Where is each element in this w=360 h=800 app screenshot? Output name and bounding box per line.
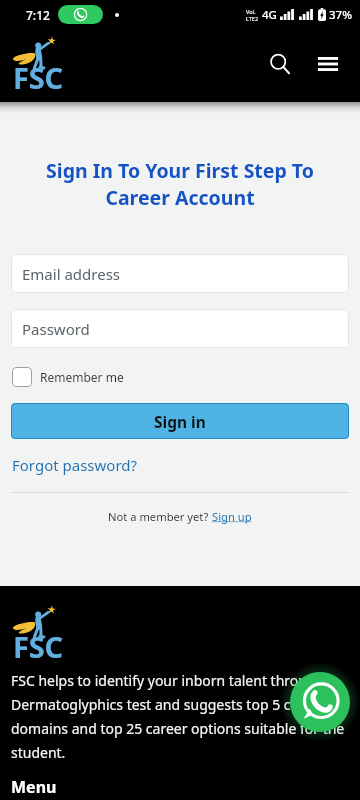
staticText: Forgot password?: [12, 455, 138, 475]
staticText: Sign in: [154, 411, 206, 432]
button[interactable]: Remember me: [12, 367, 124, 387]
staticText: Email address: [22, 264, 121, 284]
staticText: Password: [22, 319, 90, 339]
staticText: FSC helps to identify your inborn talent…: [11, 671, 345, 762]
button[interactable]: Forgot password?: [12, 455, 138, 475]
button[interactable]: Sign in: [11, 403, 349, 439]
staticText: 37%: [329, 7, 352, 23]
button[interactable]: Password: [11, 309, 349, 348]
staticText: Remember me: [40, 369, 124, 385]
staticText: FSC: [13, 58, 63, 97]
staticText: 4G: [262, 7, 277, 23]
button[interactable]: Chat on WhatsApp: [290, 672, 350, 732]
staticText: Menu: [11, 776, 57, 798]
button[interactable]: Sign up: [212, 509, 252, 524]
staticText: LTE2: [246, 15, 259, 22]
staticText: VoL: [246, 8, 256, 15]
staticText: Sign up: [212, 509, 252, 524]
staticText: 7:12: [26, 7, 50, 23]
staticText: FSC: [13, 627, 63, 666]
button[interactable]: Search: [261, 45, 299, 83]
button[interactable]: Email address: [11, 254, 349, 293]
button[interactable]: Menu: [309, 45, 347, 83]
staticText: Sign In To Your First Step To Career Acc…: [26, 157, 334, 211]
staticText: Not a member yet?: [108, 509, 212, 524]
